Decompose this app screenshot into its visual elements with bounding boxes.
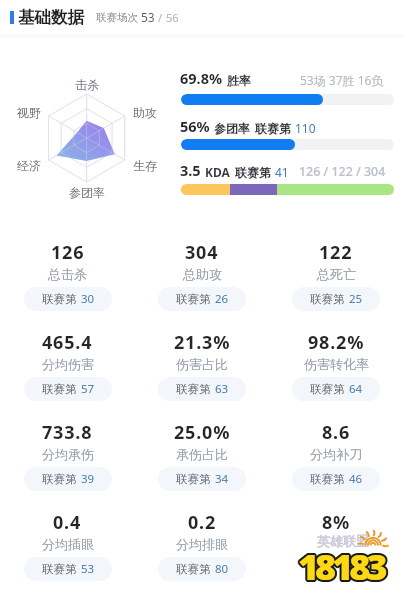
button[interactable]: 304: [135, 236, 269, 326]
staticText: 110: [295, 120, 316, 136]
staticText: 18183: [296, 541, 382, 590]
staticText: 助攻: [133, 105, 157, 120]
staticText: 联赛第: [255, 121, 291, 136]
staticText: 126: [51, 240, 85, 265]
staticText: 465.4: [42, 330, 93, 355]
staticText: 18183: [298, 542, 384, 591]
staticText: 53: [81, 561, 95, 577]
button[interactable]: 8.6: [269, 416, 403, 506]
staticText: 联赛场次: [96, 11, 138, 24]
button[interactable]: 25.0%: [135, 416, 269, 506]
staticText: 126 / 122 / 304: [299, 163, 386, 180]
button[interactable]: 122: [269, 236, 403, 326]
staticText: 18183: [297, 543, 383, 592]
button[interactable]: 8%: [269, 506, 403, 596]
staticText: 英雄联盟: [317, 533, 369, 549]
staticText: 分均排眼: [176, 536, 228, 552]
staticText: 8.6: [322, 420, 351, 445]
staticText: 联赛第: [42, 472, 77, 486]
staticText: 64: [349, 381, 363, 397]
staticText: 联赛第: [176, 562, 211, 576]
staticText: 伤害转化率: [304, 356, 369, 372]
staticText: 39: [81, 471, 95, 487]
staticText: 承伤占比: [176, 446, 228, 462]
staticText: 34: [215, 471, 229, 487]
staticText: 击杀: [75, 77, 99, 92]
staticText: 53场 37胜 16负: [300, 72, 384, 88]
staticText: 联赛第: [176, 382, 211, 396]
staticText: 分均伤害: [42, 356, 94, 372]
staticText: 41: [275, 164, 289, 180]
staticText: 联赛第: [176, 292, 211, 306]
staticText: 18183: [299, 544, 385, 593]
staticText: 46: [349, 471, 363, 487]
staticText: 18183: [299, 543, 385, 592]
staticText: 80: [215, 561, 229, 577]
staticText: 0.2: [188, 510, 217, 535]
staticText: 分均插眼: [42, 536, 94, 552]
staticText: 30: [81, 291, 95, 307]
staticText: 总死亡: [317, 266, 356, 282]
staticText: 53: [141, 9, 155, 25]
button[interactable]: 733.8: [0, 416, 135, 506]
staticText: 18183: [299, 541, 385, 590]
staticText: 733.8: [42, 420, 93, 445]
staticText: 联赛第: [176, 472, 211, 486]
staticText: KDA: [205, 164, 230, 180]
staticText: 总助攻: [183, 266, 222, 282]
staticText: 联赛第: [310, 472, 345, 486]
staticText: 联赛第: [310, 382, 345, 396]
staticText: 63: [215, 381, 229, 397]
staticText: 98.2%: [308, 330, 365, 355]
staticText: 联赛第: [42, 292, 77, 306]
staticText: 伤害占比: [176, 356, 228, 372]
staticText: 304: [185, 240, 219, 265]
staticText: 0.4: [53, 510, 82, 535]
staticText: 联赛第: [310, 292, 345, 306]
staticText: 参团率: [214, 121, 250, 136]
staticText: 胜率: [227, 73, 251, 88]
staticText: 69.8%: [180, 68, 223, 88]
staticText: 18183: [298, 541, 384, 590]
staticText: 联赛第: [42, 382, 77, 396]
staticText: 参团率: [69, 185, 105, 200]
staticText: /: [158, 10, 163, 25]
staticText: 18183: [300, 543, 386, 592]
button[interactable]: 0.4: [0, 506, 135, 596]
button[interactable]: 基础数据: [0, 4, 403, 30]
staticText: 25.0%: [174, 420, 231, 445]
staticText: 18183: [298, 540, 384, 589]
button[interactable]: 98.2%: [269, 326, 403, 416]
button[interactable]: 21.3%: [135, 326, 269, 416]
staticText: 56%: [180, 116, 210, 136]
staticText: 联赛第: [235, 165, 271, 180]
button[interactable]: 126: [0, 236, 135, 326]
staticText: 18183: [299, 540, 385, 589]
staticText: 21.3%: [174, 330, 231, 355]
staticText: 3.5: [180, 160, 201, 180]
staticText: 18183: [297, 541, 383, 590]
staticText: 经济: [17, 158, 41, 173]
staticText: 18183: [298, 543, 384, 592]
staticText: 18183: [297, 542, 383, 591]
staticText: 分均承伤: [42, 446, 94, 462]
staticText: 生存: [133, 158, 157, 173]
staticText: 56: [166, 10, 179, 25]
staticText: 8%: [322, 510, 351, 535]
staticText: 基础数据: [18, 7, 84, 28]
button[interactable]: 0.2: [135, 506, 269, 596]
staticText: 18183: [296, 543, 382, 592]
staticText: 18183: [300, 541, 386, 590]
staticText: 57: [81, 381, 95, 397]
staticText: 视野: [17, 105, 41, 120]
staticText: 18183: [299, 542, 385, 591]
staticText: 25: [349, 291, 363, 307]
staticText: 18183: [300, 542, 386, 591]
staticText: 18183: [297, 540, 383, 589]
staticText: 26: [215, 291, 229, 307]
staticText: 122: [319, 240, 353, 265]
staticText: 18183: [296, 542, 382, 591]
staticText: 18183: [298, 544, 384, 593]
button[interactable]: 465.4: [0, 326, 135, 416]
staticText: 联赛第: [42, 562, 77, 576]
